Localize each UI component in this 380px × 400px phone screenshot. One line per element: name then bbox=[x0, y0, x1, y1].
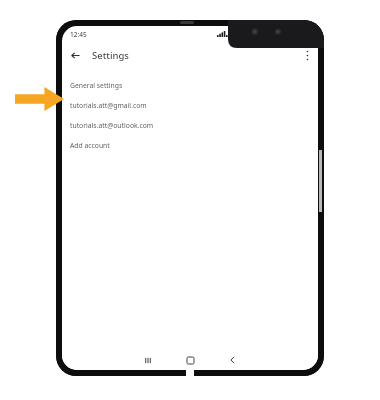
button[interactable]: Add account bbox=[62, 135, 318, 155]
staticText: tutorials.att@outlook.com bbox=[70, 121, 154, 130]
staticText: 12:45 bbox=[70, 30, 87, 39]
button[interactable]: Home bbox=[169, 350, 211, 370]
button[interactable]: More options bbox=[299, 47, 315, 63]
button[interactable]: General settings bbox=[62, 75, 318, 95]
staticText: Add account bbox=[70, 141, 110, 150]
staticText: Settings bbox=[92, 49, 129, 62]
button[interactable]: tutorials.att@outlook.com bbox=[62, 115, 318, 135]
button[interactable]: Back bbox=[211, 350, 253, 370]
staticText: tutorials.att@gmail.com bbox=[70, 101, 147, 110]
button[interactable]: Recents bbox=[127, 350, 169, 370]
staticText: General settings bbox=[70, 81, 123, 90]
button[interactable]: tutorials.att@gmail.com bbox=[62, 95, 318, 115]
button[interactable]: Back bbox=[66, 46, 84, 64]
